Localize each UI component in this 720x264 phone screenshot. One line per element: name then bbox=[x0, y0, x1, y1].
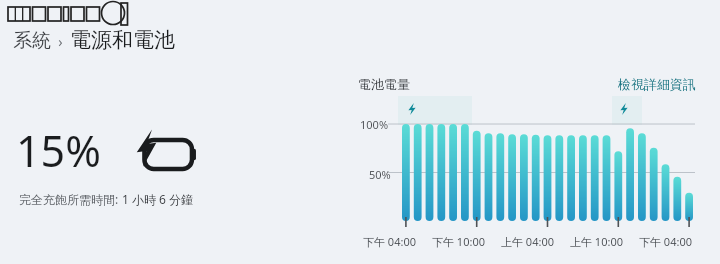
staticText: 電池電量 bbox=[358, 76, 410, 92]
staticText: 上午 04:00 bbox=[493, 234, 562, 249]
other: Battery charging bbox=[130, 129, 202, 181]
button[interactable]: 系統 bbox=[13, 29, 51, 53]
staticText: 下午 04:00 bbox=[355, 234, 424, 249]
staticText: 系統 bbox=[13, 29, 51, 53]
staticText: 下午 10:00 bbox=[424, 234, 493, 249]
staticText: 上午 10:00 bbox=[562, 234, 631, 249]
staticText: 電源和電池 bbox=[70, 27, 175, 53]
staticText: 檢視詳細資訊 bbox=[618, 76, 696, 92]
staticText: 50% bbox=[369, 167, 391, 182]
staticText: 完全充飽所需時間: bbox=[19, 191, 122, 207]
staticText: 1 小時 6 分鐘 bbox=[122, 191, 194, 207]
button[interactable]: 檢視詳細資訊 bbox=[618, 76, 696, 92]
staticText: › bbox=[51, 32, 70, 51]
staticText: 100% bbox=[360, 117, 389, 132]
staticText: 下午 04:00 bbox=[631, 234, 700, 249]
staticText: 15% bbox=[16, 121, 101, 180]
